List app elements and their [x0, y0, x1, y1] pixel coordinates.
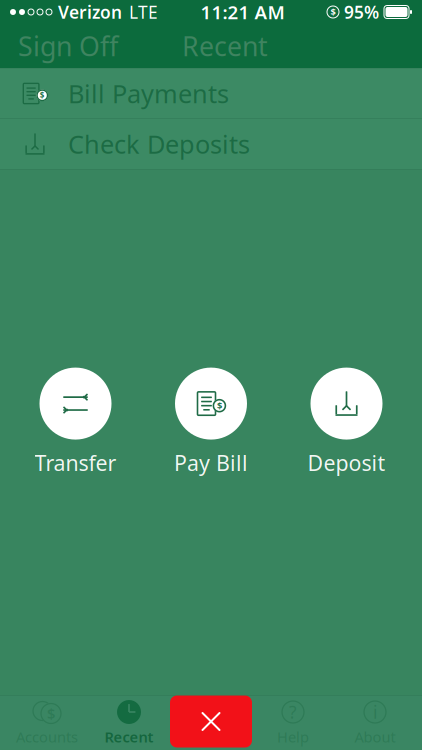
staticText: Transfer — [34, 449, 116, 477]
staticText: Recent — [104, 727, 153, 746]
staticText: 95% — [344, 0, 379, 23]
button[interactable]: $ — [151, 368, 271, 477]
button[interactable]: $ — [0, 68, 422, 119]
staticText: Help — [277, 727, 309, 746]
staticText: i — [373, 700, 377, 723]
button[interactable]: Sign Off — [0, 18, 118, 74]
staticText: 11:21 AM — [200, 0, 284, 24]
staticText: Verizon — [58, 0, 122, 23]
staticText: $ — [330, 6, 335, 18]
button[interactable]: Check Deposits — [0, 119, 422, 169]
staticText: Accounts — [16, 727, 78, 746]
button[interactable]: Transfer — [15, 368, 135, 477]
staticText: Bill Payments — [68, 77, 229, 110]
staticText: Pay Bill — [174, 449, 248, 477]
staticText: Recent — [182, 28, 268, 64]
staticText: ? — [289, 700, 297, 723]
staticText: Deposit — [307, 449, 385, 477]
staticText: $ — [47, 704, 55, 723]
button[interactable]: Close — [170, 695, 252, 747]
staticText: Sign Off — [18, 28, 118, 64]
staticText: Check Deposits — [68, 127, 250, 161]
staticText: $ — [40, 90, 45, 101]
button[interactable]: Recent — [88, 697, 170, 749]
staticText: LTE — [129, 0, 158, 23]
staticText: $ — [217, 399, 222, 412]
staticText: About — [354, 727, 395, 746]
button[interactable]: Deposit — [286, 368, 406, 477]
